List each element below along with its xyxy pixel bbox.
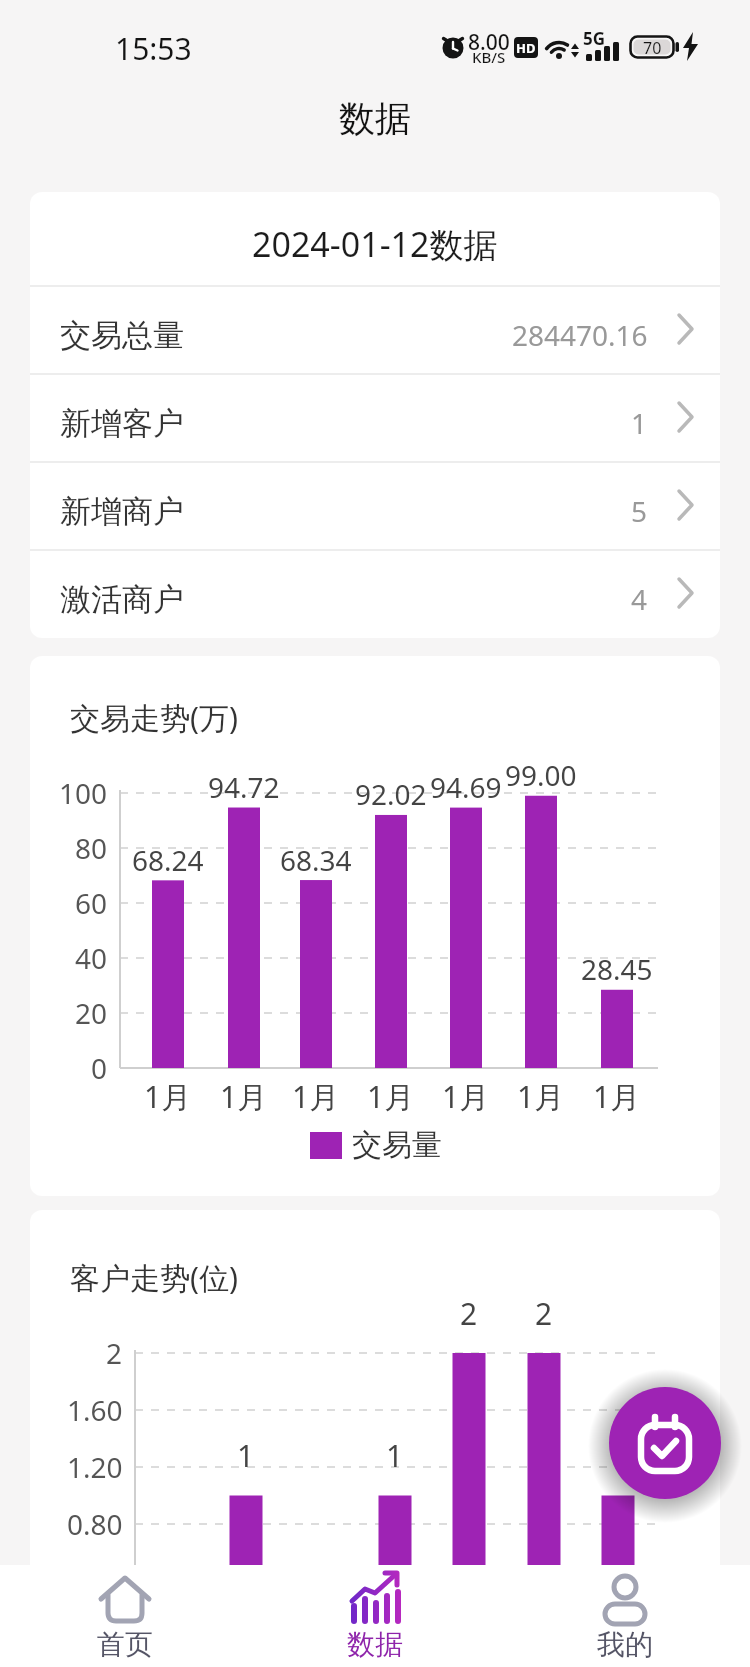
staticText: 60 <box>75 884 108 922</box>
staticText: 我的 <box>597 1627 653 1662</box>
button[interactable] <box>30 462 720 548</box>
button[interactable] <box>30 374 720 460</box>
staticText: 28.45 <box>581 950 653 988</box>
staticText: 交易量 <box>352 1126 442 1164</box>
staticText: 0 <box>91 1049 108 1087</box>
staticText: KB/S <box>472 47 506 63</box>
staticText: 1月 <box>367 1076 415 1117</box>
staticText: 1月 <box>517 1076 565 1117</box>
staticText: 1.60 <box>67 1391 123 1429</box>
button[interactable] <box>30 550 720 636</box>
button[interactable] <box>275 1565 475 1667</box>
staticText: 2 <box>106 1334 123 1372</box>
staticText: 5G <box>583 27 606 45</box>
staticText: 100 <box>59 774 108 812</box>
staticText: 2024-01-12数据 <box>252 221 498 267</box>
staticText: 68.34 <box>280 841 352 879</box>
staticText: 新增客户 <box>60 404 184 443</box>
staticText: 1 <box>609 1435 627 1475</box>
staticText: 99.00 <box>505 756 577 794</box>
staticText: 0.80 <box>67 1505 123 1543</box>
staticText: 2 <box>535 1293 553 1333</box>
staticText: 数据 <box>339 96 411 141</box>
staticText: 1 <box>237 1435 255 1475</box>
button[interactable] <box>25 1565 225 1667</box>
staticText: 1 <box>386 1435 404 1475</box>
staticText: 1.20 <box>67 1448 123 1486</box>
staticText: 1 <box>631 404 648 442</box>
staticText: 4 <box>631 580 648 618</box>
staticText: 80 <box>75 829 108 867</box>
staticText: 1月 <box>144 1076 192 1117</box>
staticText: 1月 <box>220 1076 268 1117</box>
staticText: 1月 <box>442 1076 490 1117</box>
staticText: 数据 <box>347 1627 403 1662</box>
button[interactable] <box>525 1565 725 1667</box>
staticText: 2 <box>460 1293 478 1333</box>
staticText: 新增商户 <box>60 492 184 531</box>
staticText: 5 <box>631 492 648 530</box>
staticText: 1月 <box>292 1076 340 1117</box>
staticText: 70 <box>643 37 662 59</box>
staticText: 68.24 <box>132 841 204 879</box>
staticText: 94.72 <box>208 768 280 806</box>
staticText: 首页 <box>97 1627 153 1662</box>
staticText: 94.69 <box>430 768 502 806</box>
staticText: 92.02 <box>355 775 427 813</box>
staticText: 284470.16 <box>512 316 648 354</box>
staticText: 20 <box>75 994 108 1032</box>
staticText: 40 <box>75 939 108 977</box>
staticText: 1月 <box>593 1076 641 1117</box>
staticText: 激活商户 <box>60 580 184 619</box>
button[interactable] <box>30 286 720 372</box>
staticText: 客户走势(位) <box>70 1257 238 1298</box>
button[interactable] <box>609 1387 721 1499</box>
staticText: HD <box>516 39 536 57</box>
staticText: 15:53 <box>115 28 192 66</box>
staticText: 8.00 <box>468 28 510 50</box>
staticText: 交易总量 <box>60 316 184 355</box>
staticText: 交易走势(万) <box>70 697 238 738</box>
